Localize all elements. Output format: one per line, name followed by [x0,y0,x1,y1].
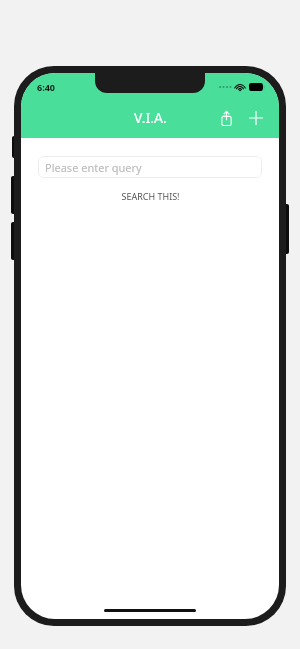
button[interactable]: Add [243,105,269,131]
staticText: Please enter query [45,160,142,175]
button[interactable]: Share [213,105,239,131]
button[interactable]: Please enter query [38,156,262,178]
staticText: 6:40 [37,81,55,93]
staticText: V.I.A. [134,108,167,127]
button[interactable]: SEARCH THIS! [21,190,279,202]
staticText: SEARCH THIS! [121,190,180,202]
